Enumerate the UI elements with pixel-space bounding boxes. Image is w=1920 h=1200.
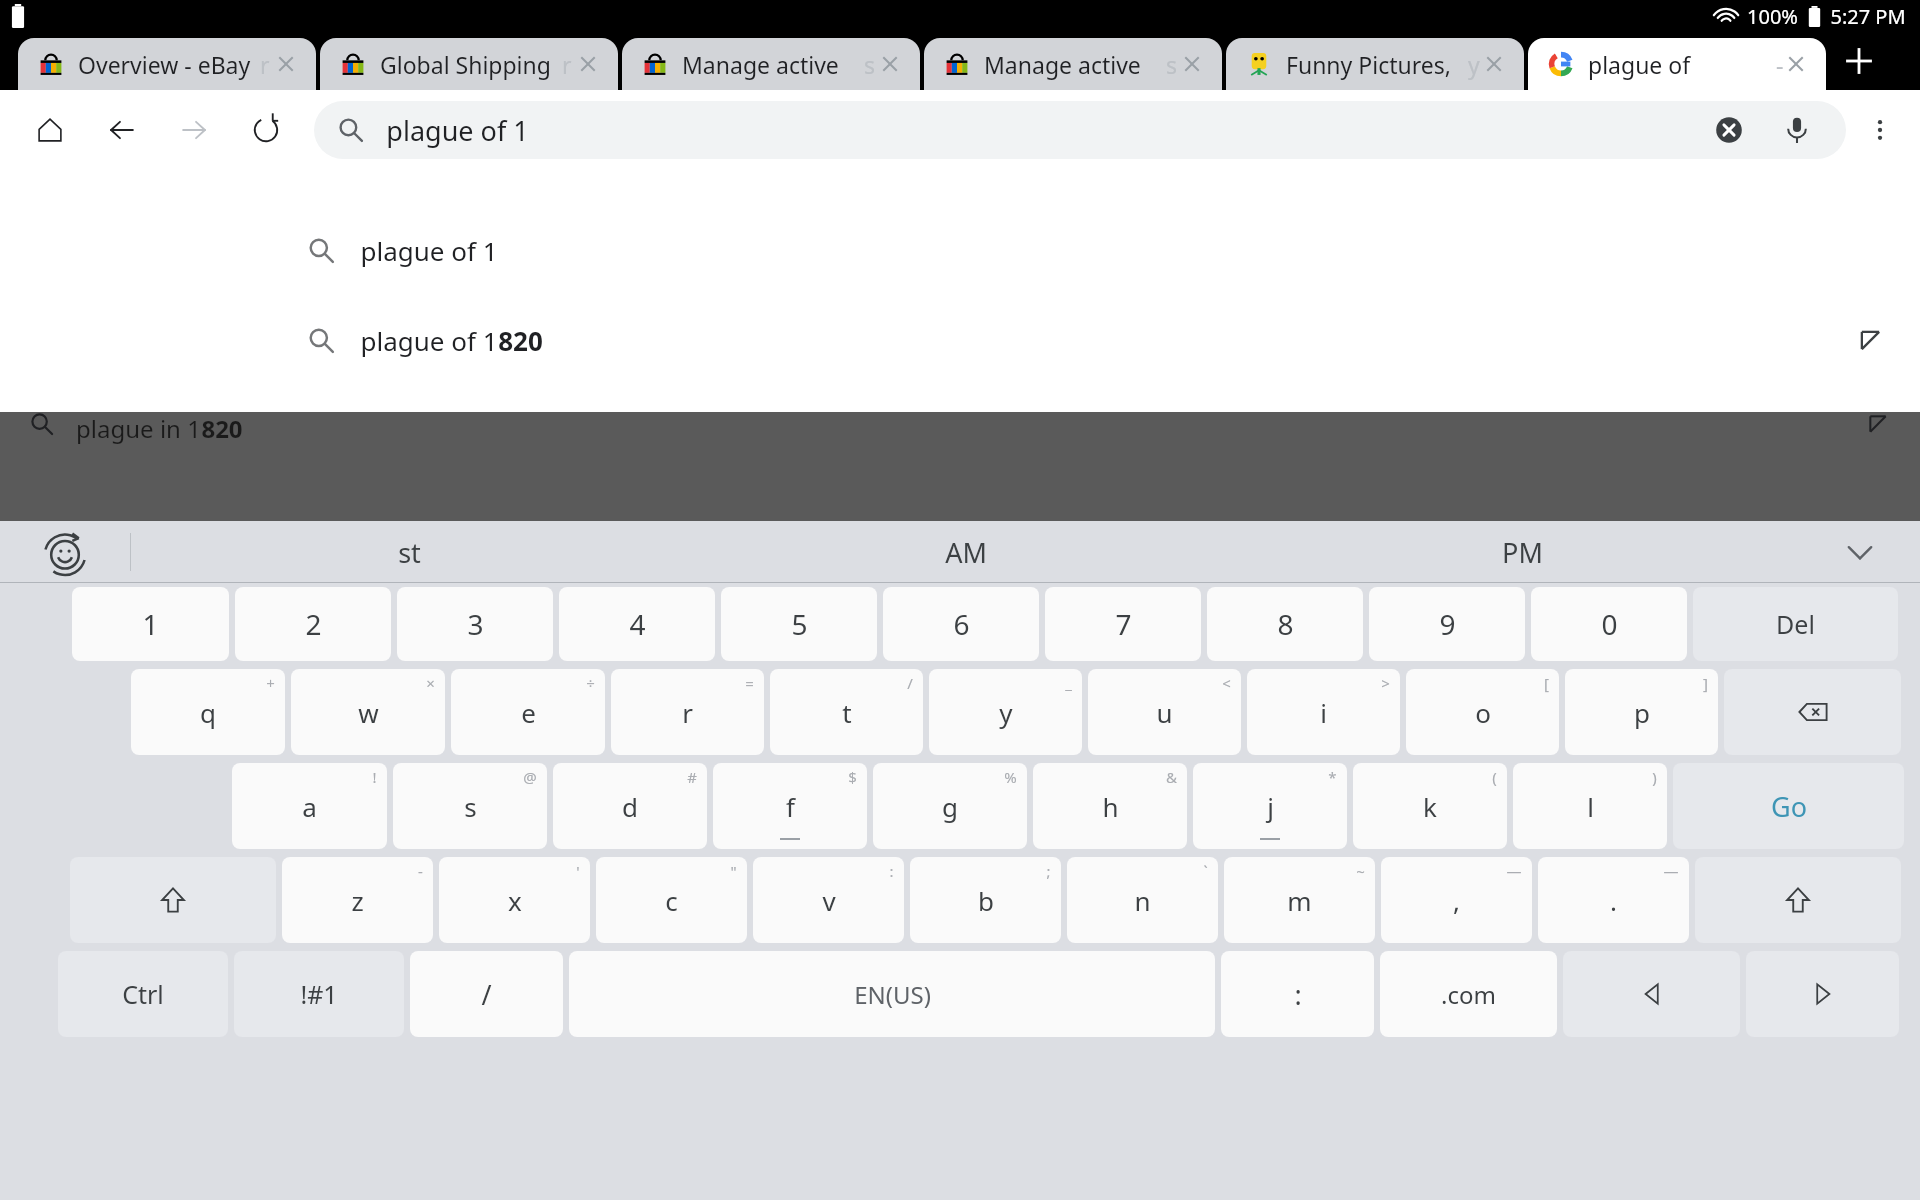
button[interactable]: i: [1247, 669, 1400, 755]
button[interactable]: Close tab: [1474, 44, 1514, 84]
button[interactable]: p: [1565, 669, 1718, 755]
button[interactable]: d: [553, 763, 707, 849]
button[interactable]: !#1: [234, 951, 404, 1037]
button[interactable]: [1695, 857, 1901, 943]
button[interactable]: PM: [1244, 521, 1800, 583]
button[interactable]: Back: [94, 102, 150, 158]
staticText: c: [665, 883, 678, 918]
button[interactable]: plague of 1: [0, 295, 1920, 385]
button[interactable]: Manage active listing: [622, 38, 920, 90]
button[interactable]: Clear: [1702, 103, 1756, 157]
button[interactable]: Voice search: [1770, 103, 1824, 157]
button[interactable]: plague of 1: [0, 205, 1920, 295]
button[interactable]: 6: [883, 587, 1039, 661]
button[interactable]: .com: [1380, 951, 1557, 1037]
button[interactable]: Emoji: [0, 521, 130, 583]
button[interactable]: More options: [1846, 96, 1914, 164]
staticText: 9: [1439, 605, 1456, 643]
button[interactable]: j: [1193, 763, 1347, 849]
button[interactable]: New tab: [1826, 32, 1892, 90]
button[interactable]: EN(US): [569, 951, 1215, 1037]
staticText: plague of 1: [360, 233, 498, 268]
button[interactable]: y: [929, 669, 1082, 755]
button[interactable]: Ctrl: [58, 951, 228, 1037]
button[interactable]: g: [873, 763, 1027, 849]
button[interactable]: Forward: [166, 102, 222, 158]
staticText: —: [1506, 861, 1522, 881]
button[interactable]: f: [713, 763, 867, 849]
button[interactable]: [1724, 669, 1901, 755]
button[interactable]: Home: [22, 102, 78, 158]
button[interactable]: h: [1033, 763, 1187, 849]
staticText: [: [1544, 673, 1549, 693]
button[interactable]: Funny Pictures, Funn: [1226, 38, 1524, 90]
button[interactable]: c: [596, 857, 747, 943]
button[interactable]: 5: [721, 587, 877, 661]
button[interactable]: e: [451, 669, 605, 755]
button[interactable]: t: [770, 669, 923, 755]
staticText: Manage active listing: [984, 49, 1166, 80]
button[interactable]: b: [910, 857, 1061, 943]
staticText: st: [398, 534, 421, 571]
button[interactable]: plague of 1: [314, 101, 1846, 159]
button[interactable]: n: [1067, 857, 1218, 943]
staticText: .: [1610, 883, 1617, 918]
button[interactable]: a: [232, 763, 387, 849]
button[interactable]: w: [291, 669, 445, 755]
button[interactable]: Reload: [238, 102, 294, 158]
button[interactable]: m: [1224, 857, 1375, 943]
button[interactable]: Close tab: [1172, 44, 1212, 84]
button[interactable]: 3: [397, 587, 553, 661]
button[interactable]: v: [753, 857, 904, 943]
button[interactable]: k: [1353, 763, 1507, 849]
button[interactable]: ,: [1381, 857, 1532, 943]
button[interactable]: 2: [235, 587, 391, 661]
button[interactable]: [70, 857, 276, 943]
other: Edit query: [1857, 327, 1884, 354]
button[interactable]: Close tab: [568, 44, 608, 84]
button[interactable]: r: [611, 669, 764, 755]
button[interactable]: Del: [1693, 587, 1898, 661]
button[interactable]: plague of 1: [0, 385, 1920, 475]
button[interactable]: u: [1088, 669, 1241, 755]
staticText: 3: [467, 605, 484, 643]
button[interactable]: o: [1406, 669, 1559, 755]
button[interactable]: :: [1221, 951, 1374, 1037]
button[interactable]: Close tab: [1776, 44, 1816, 84]
staticText: ÷: [586, 673, 595, 693]
button[interactable]: q: [131, 669, 285, 755]
button[interactable]: .: [1538, 857, 1689, 943]
button[interactable]: AM: [688, 521, 1244, 583]
button[interactable]: plague of marseille: [1528, 38, 1826, 90]
button[interactable]: Manage active listing: [924, 38, 1222, 90]
button[interactable]: l: [1513, 763, 1667, 849]
button[interactable]: Hide keyboard: [1800, 521, 1920, 583]
staticText: b: [978, 883, 994, 918]
button[interactable]: Global Shipping Prog: [320, 38, 618, 90]
button[interactable]: 1: [72, 587, 229, 661]
button[interactable]: [1746, 951, 1899, 1037]
button[interactable]: /: [410, 951, 563, 1037]
button[interactable]: 4: [559, 587, 715, 661]
button[interactable]: st: [131, 521, 688, 583]
staticText: -: [418, 861, 423, 881]
button[interactable]: 9: [1369, 587, 1525, 661]
button[interactable]: 0: [1531, 587, 1687, 661]
button[interactable]: 7: [1045, 587, 1201, 661]
staticText: ": [730, 861, 737, 881]
button[interactable]: 8: [1207, 587, 1363, 661]
button[interactable]: s: [393, 763, 547, 849]
button[interactable]: [1563, 951, 1740, 1037]
button[interactable]: Close tab: [870, 44, 910, 84]
staticText: EN(US): [854, 978, 931, 1011]
staticText: ): [1652, 767, 1657, 787]
staticText: Global Shipping Prog: [380, 49, 562, 80]
staticText: ,: [1453, 883, 1460, 918]
button[interactable]: Close tab: [266, 44, 306, 84]
button[interactable]: Overview - eBay Selle: [18, 38, 316, 90]
button[interactable]: z: [282, 857, 433, 943]
button[interactable]: x: [439, 857, 590, 943]
button[interactable]: Go: [1673, 763, 1904, 849]
